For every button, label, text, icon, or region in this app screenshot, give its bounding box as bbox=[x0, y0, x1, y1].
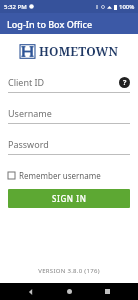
staticText: Log-In to Box Office bbox=[7, 18, 93, 30]
button[interactable]: Remember username bbox=[8, 167, 130, 183]
staticText: 5:32 PM bbox=[4, 3, 27, 11]
button[interactable]: Back bbox=[22, 283, 39, 300]
button[interactable]: Home bbox=[61, 283, 78, 300]
staticText: Username bbox=[8, 107, 52, 119]
button[interactable]: Help bbox=[119, 77, 130, 88]
staticText: Password bbox=[8, 138, 49, 150]
staticText: SIGN IN bbox=[52, 193, 87, 204]
staticText: ? bbox=[123, 78, 127, 88]
button[interactable]: SIGN IN bbox=[8, 189, 130, 208]
staticText: Client ID bbox=[8, 76, 45, 88]
staticText: 100% bbox=[119, 3, 135, 11]
staticText: HOMETOWN bbox=[39, 43, 119, 59]
button[interactable]: Recent apps bbox=[99, 283, 116, 300]
staticText: Remember username bbox=[19, 170, 101, 181]
staticText: VERSION 3.8.0 (176) bbox=[0, 267, 138, 275]
